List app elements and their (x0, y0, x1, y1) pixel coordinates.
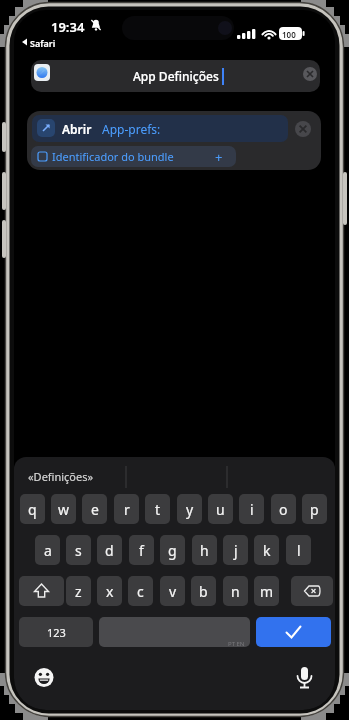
button[interactable]: App Definições (31, 60, 320, 92)
button[interactable] (99, 617, 250, 647)
button[interactable]: i (239, 494, 264, 524)
staticText: i (250, 500, 254, 519)
staticText: «Definições» (28, 469, 94, 484)
button[interactable] (291, 576, 333, 606)
staticText: l (297, 541, 301, 560)
staticText: App-prefs: (102, 121, 161, 137)
staticText: App Definições (133, 68, 219, 84)
staticText: d (105, 541, 114, 560)
staticText: x (106, 582, 114, 601)
button[interactable] (32, 666, 56, 690)
staticText: f (139, 541, 144, 560)
button[interactable] (292, 666, 316, 690)
button[interactable]: h (192, 535, 217, 565)
staticText: 19:34 (51, 18, 85, 36)
button[interactable]: n (223, 576, 248, 606)
button[interactable]: w (51, 494, 76, 524)
button[interactable]: t (145, 494, 170, 524)
staticText: 100 (282, 29, 296, 40)
staticText: s (75, 541, 82, 560)
staticText: q (28, 500, 37, 519)
button[interactable]: o (271, 494, 296, 524)
staticText: o (279, 500, 288, 519)
staticText: u (216, 500, 225, 519)
button[interactable]: e (82, 494, 107, 524)
button[interactable]: y (177, 494, 202, 524)
button[interactable]: l (286, 535, 311, 565)
staticText: h (200, 541, 209, 560)
staticText: t (155, 500, 161, 519)
button[interactable]: d (97, 535, 122, 565)
button[interactable]: k (254, 535, 279, 565)
button[interactable] (31, 146, 236, 167)
staticText: e (91, 500, 99, 519)
button[interactable]: j (223, 535, 248, 565)
staticText: Safari (30, 37, 56, 49)
staticText: r (124, 500, 130, 519)
button[interactable] (19, 576, 64, 606)
button[interactable] (256, 617, 331, 647)
button[interactable]: u (208, 494, 233, 524)
staticText: Abrir (62, 121, 92, 137)
staticText: PT EN (228, 640, 245, 648)
button[interactable]: f (129, 535, 154, 565)
staticText: v (169, 582, 177, 601)
staticText: Identificador do bundle (52, 149, 174, 164)
staticText: k (263, 541, 271, 560)
button[interactable]: m (254, 576, 279, 606)
button[interactable]: s (66, 535, 91, 565)
staticText: 123 (47, 625, 66, 640)
button[interactable] (32, 115, 288, 142)
staticText: b (199, 582, 208, 601)
staticText: j (234, 541, 238, 560)
button[interactable]: z (66, 576, 91, 606)
staticText: + (215, 148, 223, 166)
button[interactable]: v (160, 576, 185, 606)
button[interactable]: b (191, 576, 216, 606)
staticText: c (137, 582, 144, 601)
staticText: y (186, 500, 194, 519)
staticText: g (168, 541, 177, 560)
button[interactable]: p (302, 494, 327, 524)
button[interactable] (303, 67, 317, 81)
staticText: m (260, 582, 274, 601)
button[interactable]: 123 (19, 617, 93, 647)
staticText: z (75, 582, 82, 601)
button[interactable]: r (114, 494, 139, 524)
staticText: n (231, 582, 240, 601)
staticText: p (310, 500, 319, 519)
staticText: a (44, 541, 52, 560)
button[interactable]: x (97, 576, 122, 606)
button[interactable]: q (20, 494, 45, 524)
staticText: w (58, 500, 70, 519)
button[interactable]: g (160, 535, 185, 565)
button[interactable]: c (128, 576, 153, 606)
button[interactable]: a (35, 535, 60, 565)
button[interactable] (295, 121, 311, 137)
